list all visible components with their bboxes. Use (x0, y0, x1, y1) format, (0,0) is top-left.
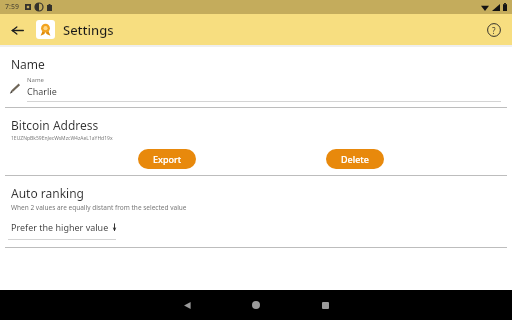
other: Edit name (7, 81, 21, 95)
button[interactable]: Export (138, 149, 196, 169)
staticText: 1EUZNpBk59EnJecWsMzcW4zAeL1aYHd19x (11, 135, 113, 142)
button[interactable]: Home (241, 290, 271, 320)
button[interactable]: Help (483, 19, 505, 41)
staticText: Settings (63, 21, 114, 39)
staticText: ? (492, 25, 496, 36)
staticText: Name (11, 56, 45, 72)
button[interactable]: Edit name (0, 76, 512, 102)
button[interactable]: Prefer the higher value (8, 221, 116, 240)
staticText: Export (153, 153, 182, 165)
staticText: Auto ranking (11, 185, 84, 201)
button[interactable]: Back (172, 290, 202, 320)
staticText: Delete (341, 153, 369, 165)
staticText: Prefer the higher value (11, 221, 109, 233)
button[interactable]: Delete (326, 149, 384, 169)
other: Change auto ranking (113, 223, 116, 231)
staticText: Charlie (27, 85, 57, 97)
staticText: When 2 values are equally distant from t… (11, 203, 187, 212)
button[interactable]: Recent apps (310, 290, 340, 320)
staticText: Name (27, 76, 44, 84)
staticText: Bitcoin Address (11, 117, 99, 133)
button[interactable]: Back (5, 18, 29, 42)
staticText: 7:59 (5, 2, 19, 12)
